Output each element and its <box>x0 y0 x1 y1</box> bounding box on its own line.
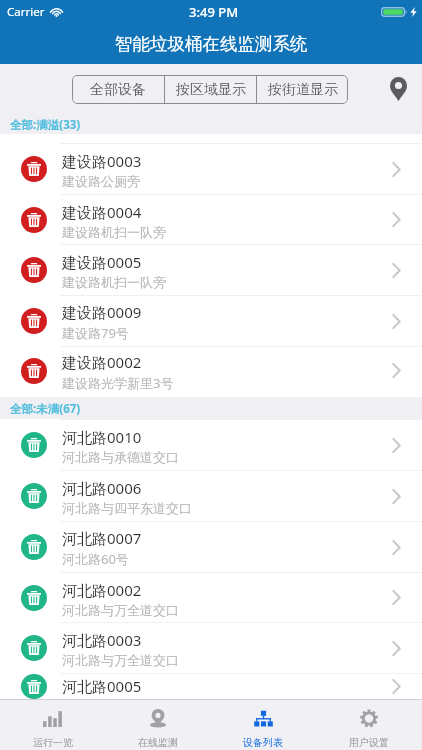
button[interactable]: Map <box>378 64 418 104</box>
staticText: 建设路0002 <box>62 352 142 372</box>
staticText: 3:49 PM <box>189 3 239 21</box>
staticText: 智能垃圾桶在线监测系统 <box>115 33 308 55</box>
staticText: 全部设备 <box>90 81 146 99</box>
staticText: 在线监测 <box>138 736 178 749</box>
staticText: Carrier <box>7 4 45 20</box>
button[interactable]: 建设路0004 <box>0 195 422 244</box>
staticText: 按区域显示 <box>176 81 246 99</box>
staticText: 建设路0004 <box>62 202 142 222</box>
button[interactable]: 河北路0002 <box>0 573 422 622</box>
button[interactable]: 河北路0010 <box>0 420 422 470</box>
button[interactable]: 河北路0003 <box>0 623 422 673</box>
button[interactable]: 河北路0007 <box>0 522 422 572</box>
staticText: 建设路公厕旁 <box>62 173 140 189</box>
staticText: 建设路79号 <box>62 324 129 342</box>
staticText: 河北路与承德道交口 <box>62 449 179 465</box>
staticText: 用户设置 <box>349 736 389 749</box>
staticText: 按街道显示 <box>268 81 338 99</box>
staticText: 河北路60号 <box>62 550 129 568</box>
button[interactable]: 全部设备 <box>72 75 164 104</box>
button[interactable]: 河北路0006 <box>0 471 422 521</box>
staticText: 建设路0009 <box>62 302 142 322</box>
staticText: 河北路0002 <box>62 580 142 600</box>
button[interactable]: 建设路0002 <box>0 347 422 394</box>
button[interactable]: 设备列表 <box>210 700 316 750</box>
button[interactable]: 建设路0003 <box>0 144 422 194</box>
button[interactable]: 按街道显示 <box>257 75 348 104</box>
staticText: 河北路0007 <box>62 528 142 548</box>
staticText: 河北路0010 <box>62 427 142 447</box>
staticText: 建设路光学新里3号 <box>62 374 174 392</box>
staticText: 河北路0006 <box>62 478 142 498</box>
staticText: 建设路机扫一队旁 <box>62 274 166 290</box>
staticText: 建设路0003 <box>62 151 142 171</box>
button[interactable]: 建设路0009 <box>0 296 422 346</box>
button[interactable]: 按区域显示 <box>165 75 256 104</box>
staticText: 河北路0005 <box>62 676 142 696</box>
button[interactable]: 用户设置 <box>316 700 422 750</box>
staticText: 河北路与四平东道交口 <box>62 500 192 516</box>
staticText: 河北路与万全道交口 <box>62 602 179 618</box>
button[interactable]: 河北路0005 <box>0 674 422 699</box>
button[interactable]: 运行一览 <box>0 700 105 750</box>
staticText: 建设路机扫一队旁 <box>62 224 166 240</box>
button[interactable]: 在线监测 <box>105 700 210 750</box>
staticText: 全部:未满(67) <box>10 401 81 417</box>
staticText: 运行一览 <box>33 736 73 749</box>
button[interactable]: 建设路0005 <box>0 245 422 295</box>
staticText: 河北路与万全道交口 <box>62 652 179 668</box>
staticText: 河北路0003 <box>62 630 142 650</box>
staticText: 建设路0005 <box>62 252 142 272</box>
staticText: 全部:满溢(33) <box>10 117 81 133</box>
staticText: 设备列表 <box>243 736 283 749</box>
